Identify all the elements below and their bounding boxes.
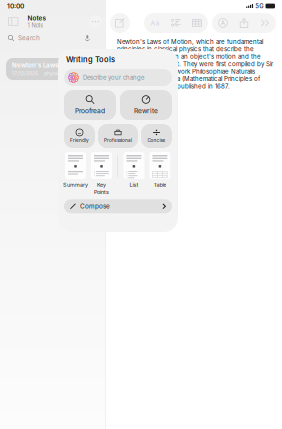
staticText: Professional [104, 137, 132, 143]
button[interactable]: Share [239, 18, 249, 28]
button[interactable]: More [89, 15, 102, 28]
staticText: Concise [147, 137, 165, 143]
staticText: Aa [150, 19, 159, 27]
staticText: Newton's Laws of Motion [12, 62, 90, 69]
button[interactable]: Checklist [171, 18, 181, 28]
button[interactable]: Concise [141, 124, 172, 148]
button[interactable]: Compose [64, 199, 172, 213]
button[interactable]: Newton's Laws of Motion [6, 58, 99, 80]
staticText: 17/12/2025 physics notes [12, 70, 79, 76]
button[interactable]: List [123, 152, 144, 188]
button[interactable]: Table [192, 18, 202, 28]
staticText: Notes [27, 14, 46, 22]
button[interactable]: More [260, 18, 270, 28]
staticText: 10:00 [7, 2, 24, 10]
button[interactable]: Professional [98, 124, 138, 148]
staticText: Compose [80, 202, 110, 210]
staticText: Key [97, 181, 106, 188]
button[interactable]: New Note [110, 13, 130, 33]
button[interactable]: Key [91, 152, 112, 195]
staticText: Newton's Laws of Motion, which are funda… [117, 38, 273, 90]
staticText: 5G [255, 2, 263, 10]
staticText: Describe your change [83, 74, 144, 81]
button[interactable]: Toggle Sidebar [6, 15, 20, 28]
staticText: List [129, 181, 138, 188]
button[interactable]: Rewrite [120, 90, 172, 120]
staticText: Search [18, 34, 40, 42]
staticText: 1 Note [27, 22, 43, 29]
button[interactable]: Format [150, 18, 160, 28]
staticText: Points [94, 189, 109, 195]
staticText: Friendly [70, 137, 89, 143]
button[interactable]: Describe your change [64, 69, 172, 86]
button[interactable]: Table [149, 152, 170, 188]
button[interactable]: Markup [218, 18, 228, 28]
staticText: Summary [63, 181, 88, 188]
staticText: Writing Tools [66, 55, 115, 64]
staticText: Table [153, 181, 166, 188]
staticText: Rewrite [134, 107, 158, 115]
button[interactable]: Summary [65, 152, 86, 188]
button[interactable]: Friendly [64, 124, 95, 148]
staticText: Proofread [75, 107, 105, 115]
button[interactable]: Proofread [64, 90, 116, 120]
